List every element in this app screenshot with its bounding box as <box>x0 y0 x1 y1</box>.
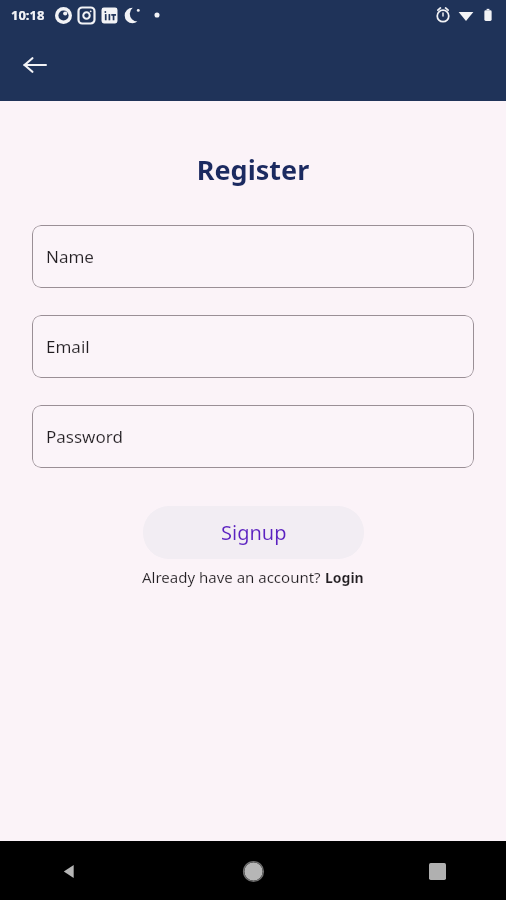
staticText: 10:18 <box>11 6 45 24</box>
staticText: Password <box>46 425 123 448</box>
button[interactable]: Recent apps <box>418 852 456 890</box>
button[interactable]: Name <box>32 225 474 288</box>
button[interactable]: Back <box>50 852 88 890</box>
button[interactable]: Password <box>32 405 474 468</box>
staticText: Email <box>46 335 90 358</box>
button[interactable]: Email <box>32 315 474 378</box>
button[interactable]: Login <box>325 568 364 587</box>
staticText: Name <box>46 245 94 268</box>
button[interactable]: Back <box>14 44 56 86</box>
staticText: Register <box>0 151 506 188</box>
staticText: Signup <box>221 519 287 546</box>
staticText: Already have an account? <box>142 567 325 587</box>
button[interactable]: Home <box>234 852 272 890</box>
staticText: Login <box>325 568 364 587</box>
button[interactable]: Signup <box>143 506 364 559</box>
